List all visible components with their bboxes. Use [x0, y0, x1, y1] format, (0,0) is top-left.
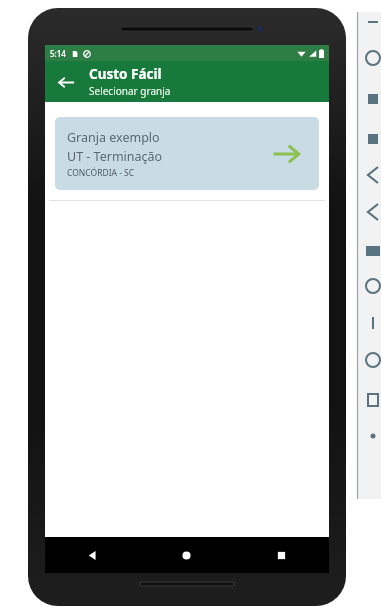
button[interactable]: Selecionar granja: [269, 137, 303, 171]
staticText: Granja exemplo: [67, 129, 160, 146]
staticText: Custo Fácil: [89, 65, 162, 83]
button[interactable]: Voltar: [49, 65, 83, 99]
button[interactable]: Voltar: [45, 537, 139, 573]
button[interactable]: Início: [139, 537, 234, 573]
staticText: UT - Terminação: [67, 148, 163, 165]
staticText: CONCÓRDIA - SC: [67, 167, 135, 179]
staticText: Selecionar granja: [89, 84, 171, 98]
button[interactable]: Granja exemplo: [55, 117, 319, 190]
staticText: 5:14: [50, 48, 66, 59]
button[interactable]: Recentes: [234, 537, 329, 573]
